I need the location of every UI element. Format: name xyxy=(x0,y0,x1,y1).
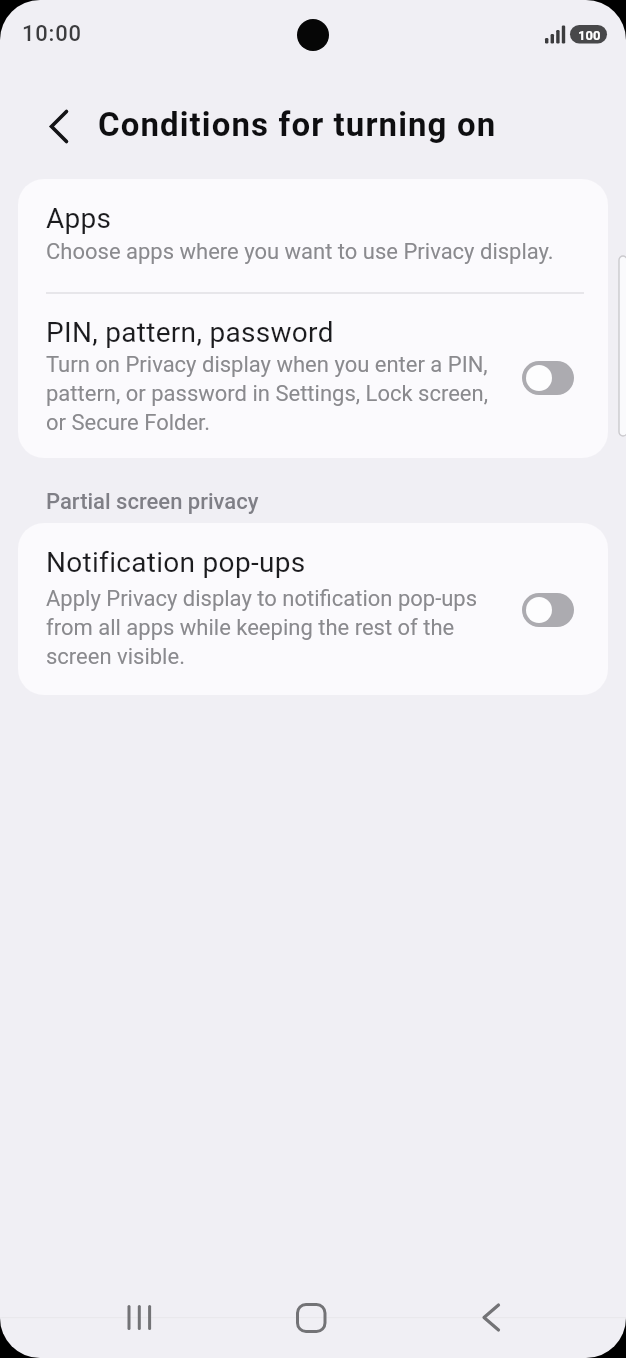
button[interactable] xyxy=(34,101,84,151)
staticText: Apps xyxy=(46,202,112,235)
button[interactable] xyxy=(18,179,608,293)
button[interactable]: Notification pop-ups xyxy=(18,523,608,695)
staticText: 100 xyxy=(578,28,601,43)
button[interactable] xyxy=(279,1285,343,1349)
staticText: Turn on Privacy display when you enter a… xyxy=(46,352,488,435)
staticText: 10:00 xyxy=(22,21,82,47)
button[interactable] xyxy=(107,1285,171,1349)
staticText: PIN, pattern, password xyxy=(46,316,334,349)
staticText: Apply Privacy display to notification po… xyxy=(46,586,478,669)
staticText: Notification pop-ups xyxy=(46,546,306,579)
button[interactable] xyxy=(522,361,574,395)
button[interactable] xyxy=(459,1285,523,1349)
button[interactable] xyxy=(522,593,574,627)
button[interactable] xyxy=(18,293,608,458)
staticText: Choose apps where you want to use Privac… xyxy=(46,239,554,265)
staticText: Conditions for turning on xyxy=(98,105,497,144)
staticText: Partial screen privacy xyxy=(46,489,259,515)
